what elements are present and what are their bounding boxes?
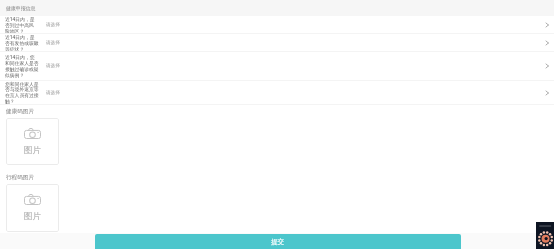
staticText: 健康码图片: [6, 108, 34, 115]
staticText: 近14日内，是 否有发热或咳嗽 等症状？: [5, 34, 44, 51]
staticText: 您和同住家人是 否与境外返京等 在京人员有过接 触？: [5, 81, 44, 104]
button[interactable]: 近14日内，您 和同住家人是否 接触过确诊或疑 似病例？: [0, 52, 554, 80]
button[interactable]: 近14日内，是 否有发热或咳嗽 等症状？: [0, 34, 554, 51]
staticText: 图片: [24, 211, 41, 222]
staticText: 近14日内，是 否到过中高风 险地区？: [5, 16, 44, 33]
staticText: 请选择: [46, 63, 60, 69]
button[interactable]: 您和同住家人是 否与境外返京等 在京人员有过接 触？: [0, 81, 554, 104]
staticText: 近14日内，您 和同住家人是否 接触过确诊或疑 似病例？: [5, 54, 44, 79]
staticText: 请选择: [46, 90, 60, 96]
staticText: 提交: [271, 238, 285, 246]
staticText: 行程码图片: [6, 174, 34, 181]
staticText: 健康申报信息: [6, 5, 36, 11]
button[interactable]: 上传图片: [6, 184, 59, 232]
button[interactable]: 近14日内，是 否到过中高风 险地区？: [0, 16, 554, 33]
button[interactable]: 提交: [95, 234, 461, 249]
staticText: 请选择: [46, 22, 60, 28]
staticText: 请选择: [46, 40, 60, 46]
staticText: 图片: [24, 145, 41, 156]
button[interactable]: 上传图片: [6, 118, 59, 165]
